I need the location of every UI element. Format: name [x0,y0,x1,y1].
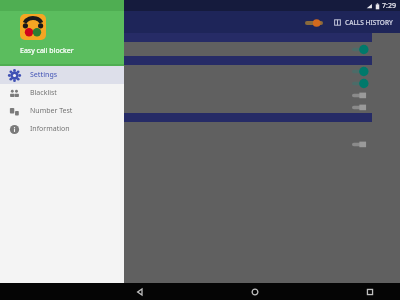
staticText: Information [30,124,70,134]
button[interactable]: Enable blocking [303,17,325,29]
button[interactable]: Back [130,283,150,300]
staticText: Blacklist [30,88,57,98]
staticText: Settings [30,70,58,80]
button[interactable]: Number Test [0,102,124,120]
button[interactable]: Home [245,283,265,300]
button[interactable] [0,77,400,89]
staticText: Easy call blocker [20,46,74,56]
button[interactable]: Blacklist [0,84,124,102]
button[interactable] [0,65,400,77]
staticText: Number Test [30,106,73,116]
button[interactable]: CALLS HISTORY [331,15,395,30]
button[interactable] [0,138,400,150]
button[interactable] [0,89,400,101]
button[interactable]: Recent apps [360,283,380,300]
staticText: CALLS HISTORY [345,18,393,27]
button[interactable] [0,101,400,113]
staticText: 7:29 [382,1,396,11]
button[interactable]: Settings [0,66,124,84]
button[interactable] [0,42,400,56]
button[interactable]: Information [0,120,124,138]
button[interactable]: Easy call blocker [20,14,46,40]
